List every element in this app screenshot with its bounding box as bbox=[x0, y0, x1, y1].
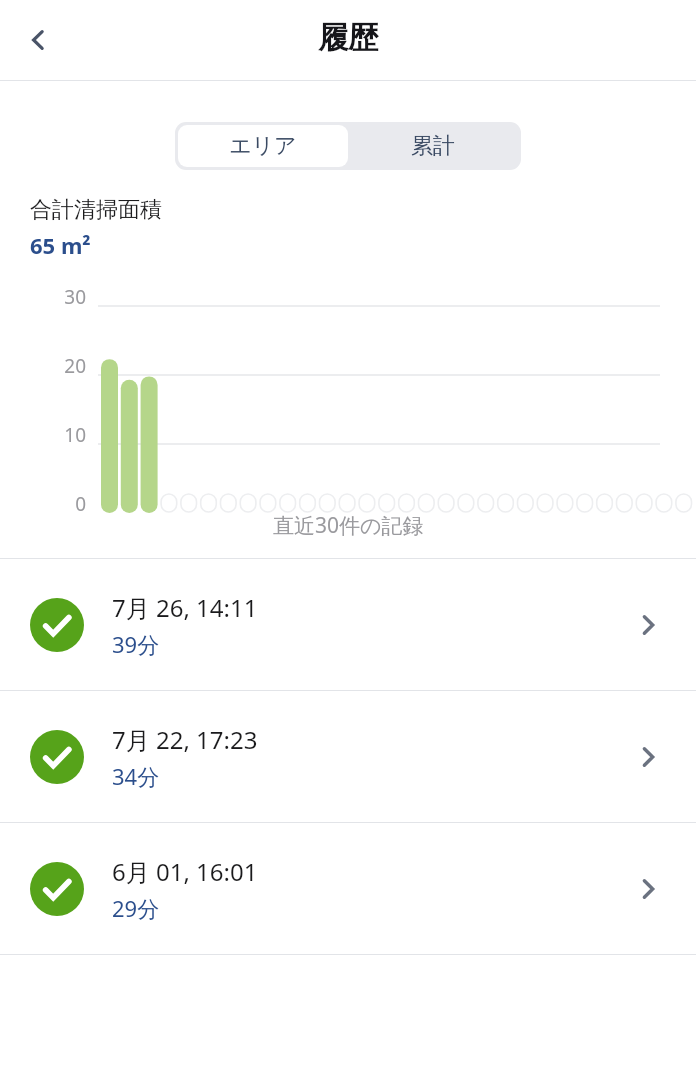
button[interactable]: Open detail bbox=[626, 603, 670, 647]
staticText: 7月 26, 14:11 bbox=[112, 591, 258, 624]
button[interactable]: 累計 bbox=[348, 125, 518, 167]
staticText: 履歴 bbox=[318, 19, 378, 57]
staticText: 0 bbox=[75, 491, 86, 517]
staticText: 30 bbox=[64, 284, 86, 310]
staticText: 65 m² bbox=[30, 230, 91, 260]
staticText: 20 bbox=[64, 353, 86, 379]
staticText: 合計清掃面積 bbox=[30, 196, 162, 224]
button[interactable]: Open detail bbox=[626, 735, 670, 779]
staticText: 6月 01, 16:01 bbox=[112, 855, 258, 888]
staticText: 34分 bbox=[112, 761, 160, 791]
staticText: 10 bbox=[64, 422, 86, 448]
staticText: 直近30件の記録 bbox=[273, 511, 424, 540]
button[interactable]: 6月 01, 16:01 bbox=[0, 823, 696, 954]
button[interactable]: Open detail bbox=[626, 867, 670, 911]
button[interactable]: 7月 22, 17:23 bbox=[0, 691, 696, 822]
button[interactable]: Back bbox=[10, 12, 66, 68]
staticText: 累計 bbox=[411, 132, 455, 160]
staticText: 7月 22, 17:23 bbox=[112, 723, 258, 756]
staticText: エリア bbox=[229, 132, 297, 160]
button[interactable]: 7月 26, 14:11 bbox=[0, 559, 696, 690]
staticText: 29分 bbox=[112, 893, 160, 923]
staticText: 39分 bbox=[112, 629, 160, 659]
button[interactable]: エリア bbox=[178, 125, 348, 167]
